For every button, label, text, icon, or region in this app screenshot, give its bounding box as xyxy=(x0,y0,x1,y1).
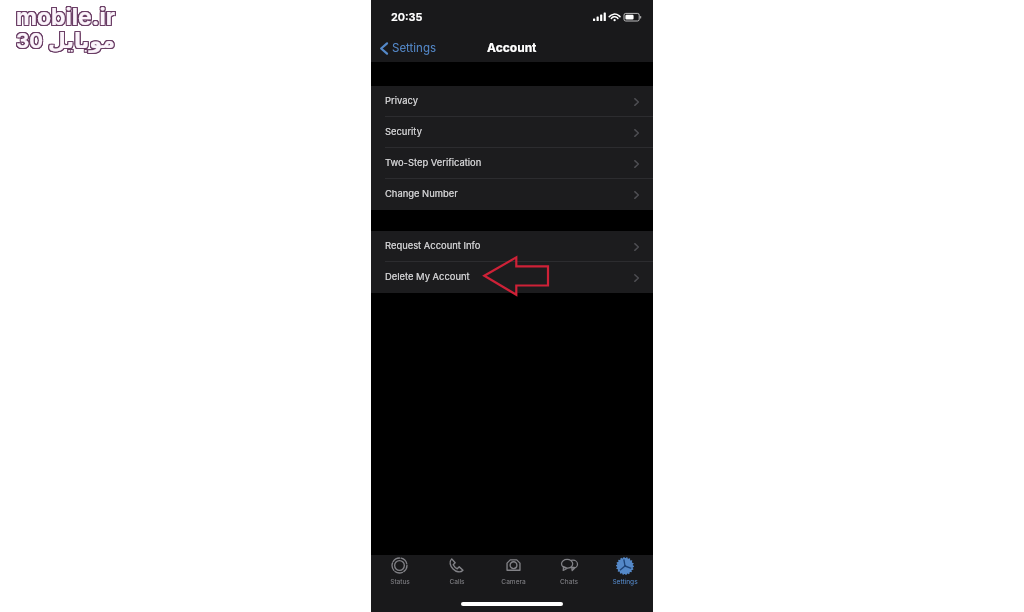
button[interactable]: Two-Step Verification xyxy=(371,148,653,179)
staticText: موبایل 30 xyxy=(15,27,114,52)
staticText: mobile.ir xyxy=(17,3,117,31)
staticText: موبایل 30 xyxy=(16,29,115,54)
staticText: موبایل 30 xyxy=(16,28,115,53)
staticText: mobile.ir xyxy=(16,4,116,32)
staticText: موبایل 30 xyxy=(16,29,115,54)
staticText: mobile.ir xyxy=(15,4,115,32)
staticText: Change Number xyxy=(385,188,458,199)
button[interactable]: Request Account Info xyxy=(371,231,653,262)
button[interactable]: Security xyxy=(371,117,653,148)
button[interactable]: Privacy xyxy=(371,86,653,117)
staticText: Security xyxy=(385,126,422,137)
staticText: Camera xyxy=(501,578,526,586)
staticText: موبایل 30 xyxy=(15,28,114,53)
staticText: mobile.ir xyxy=(15,4,115,32)
staticText: موبایل 30 xyxy=(15,27,114,52)
staticText: موبایل 30 xyxy=(17,28,116,53)
staticText: Two-Step Verification xyxy=(385,157,482,168)
staticText: موبایل 30 xyxy=(17,27,116,52)
staticText: mobile.ir xyxy=(17,4,117,32)
staticText: mobile.ir xyxy=(17,2,117,30)
staticText: موبایل 30 xyxy=(16,27,115,52)
staticText: mobile.ir xyxy=(15,4,115,32)
staticText: موبایل 30 xyxy=(17,27,116,52)
staticText: mobile.ir xyxy=(15,2,115,30)
staticText: mobile.ir xyxy=(17,2,117,30)
button[interactable]: Settings xyxy=(597,555,653,590)
button[interactable]: Camera xyxy=(485,555,541,590)
staticText: mobile.ir xyxy=(17,4,117,32)
staticText: mobile.ir xyxy=(17,2,117,30)
staticText: موبایل 30 xyxy=(17,28,116,53)
staticText: Settings xyxy=(392,41,437,55)
staticText: موبایل 30 xyxy=(17,27,116,52)
staticText: Account xyxy=(487,40,537,55)
staticText: mobile.ir xyxy=(16,3,116,31)
staticText: موبایل 30 xyxy=(15,29,114,54)
button[interactable]: Chats xyxy=(541,555,597,590)
staticText: موبایل 30 xyxy=(17,29,116,54)
staticText: موبایل 30 xyxy=(17,29,116,54)
staticText: موبایل 30 xyxy=(17,27,116,52)
staticText: mobile.ir xyxy=(15,2,115,30)
staticText: 20:35 xyxy=(391,10,423,23)
staticText: mobile.ir xyxy=(17,2,117,30)
staticText: موبایل 30 xyxy=(16,27,115,52)
staticText: موبایل 30 xyxy=(15,29,114,54)
button[interactable]: Change Number xyxy=(371,179,653,210)
staticText: mobile.ir xyxy=(17,3,117,31)
staticText: موبایل 30 xyxy=(15,28,114,53)
staticText: mobile.ir xyxy=(16,4,116,32)
staticText: Settings xyxy=(612,578,638,586)
staticText: mobile.ir xyxy=(15,4,115,32)
staticText: mobile.ir xyxy=(17,4,117,32)
staticText: موبایل 30 xyxy=(17,29,116,54)
staticText: Privacy xyxy=(385,95,418,106)
staticText: موبایل 30 xyxy=(17,29,116,54)
staticText: mobile.ir xyxy=(15,3,115,31)
staticText: mobile.ir xyxy=(16,2,116,30)
staticText: Delete My Account xyxy=(385,271,470,282)
staticText: Chats xyxy=(560,578,578,586)
staticText: موبایل 30 xyxy=(15,29,114,54)
staticText: موبایل 30 xyxy=(15,27,114,52)
staticText: mobile.ir xyxy=(15,3,115,31)
staticText: موبایل 30 xyxy=(15,27,114,52)
staticText: mobile.ir xyxy=(15,2,115,30)
button[interactable]: Status xyxy=(371,555,428,590)
button[interactable]: Delete My Account xyxy=(371,262,653,293)
staticText: Request Account Info xyxy=(385,240,481,251)
staticText: mobile.ir xyxy=(17,4,117,32)
staticText: mobile.ir xyxy=(15,2,115,30)
staticText: mobile.ir xyxy=(16,2,116,30)
button[interactable]: Calls xyxy=(428,555,485,590)
button[interactable]: Back to Settings xyxy=(371,37,445,59)
staticText: Calls xyxy=(449,578,465,586)
staticText: Status xyxy=(390,578,410,586)
staticText: موبایل 30 xyxy=(15,29,114,54)
